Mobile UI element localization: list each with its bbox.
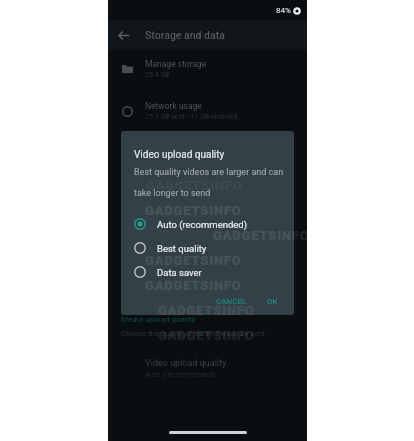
- staticText: Auto (recommended): [157, 219, 247, 230]
- staticText: Manage storage: [145, 59, 207, 69]
- staticText: Best quality videos are larger and can t…: [134, 167, 284, 198]
- staticText: GADGETSINFO: [145, 203, 242, 218]
- staticText: Network usage: [145, 101, 202, 111]
- staticText: Media upload quality: [121, 315, 196, 324]
- button[interactable]: Auto (recommended): [134, 212, 284, 236]
- staticText: Choose the quality of media files to be …: [121, 329, 265, 338]
- button[interactable]: Network usage: [108, 92, 307, 130]
- button[interactable]: Back: [108, 20, 138, 50]
- staticText: GADGETSINFO: [145, 253, 242, 268]
- staticText: GADGETSINFO: [158, 328, 255, 343]
- button[interactable]: Manage storage: [108, 50, 307, 88]
- staticText: 25.4 GB: [145, 71, 170, 79]
- staticText: Auto (recommended): [145, 370, 217, 379]
- staticText: Best quality: [157, 243, 207, 254]
- staticText: Storage and data: [145, 29, 225, 41]
- staticText: Video upload quality: [134, 149, 225, 161]
- staticText: GADGETSINFO: [158, 303, 255, 318]
- staticText: OK: [267, 297, 278, 306]
- button[interactable]: CANCEL: [210, 294, 253, 309]
- staticText: GADGETSINFO: [145, 278, 242, 293]
- button[interactable]: Data saver: [134, 260, 284, 284]
- button[interactable]: Video upload quality: [108, 353, 307, 387]
- staticText: 75.9 GB sent • 11 GB received: [145, 113, 238, 121]
- button[interactable]: Best quality: [134, 236, 284, 260]
- staticText: GADGETSINFO: [146, 178, 243, 193]
- staticText: 84%: [276, 6, 291, 15]
- staticText: Data saver: [157, 267, 202, 278]
- staticText: Video upload quality: [145, 358, 227, 369]
- staticText: CANCEL: [216, 297, 247, 306]
- staticText: GADGETSINFO: [213, 228, 310, 243]
- button[interactable]: OK: [261, 294, 284, 309]
